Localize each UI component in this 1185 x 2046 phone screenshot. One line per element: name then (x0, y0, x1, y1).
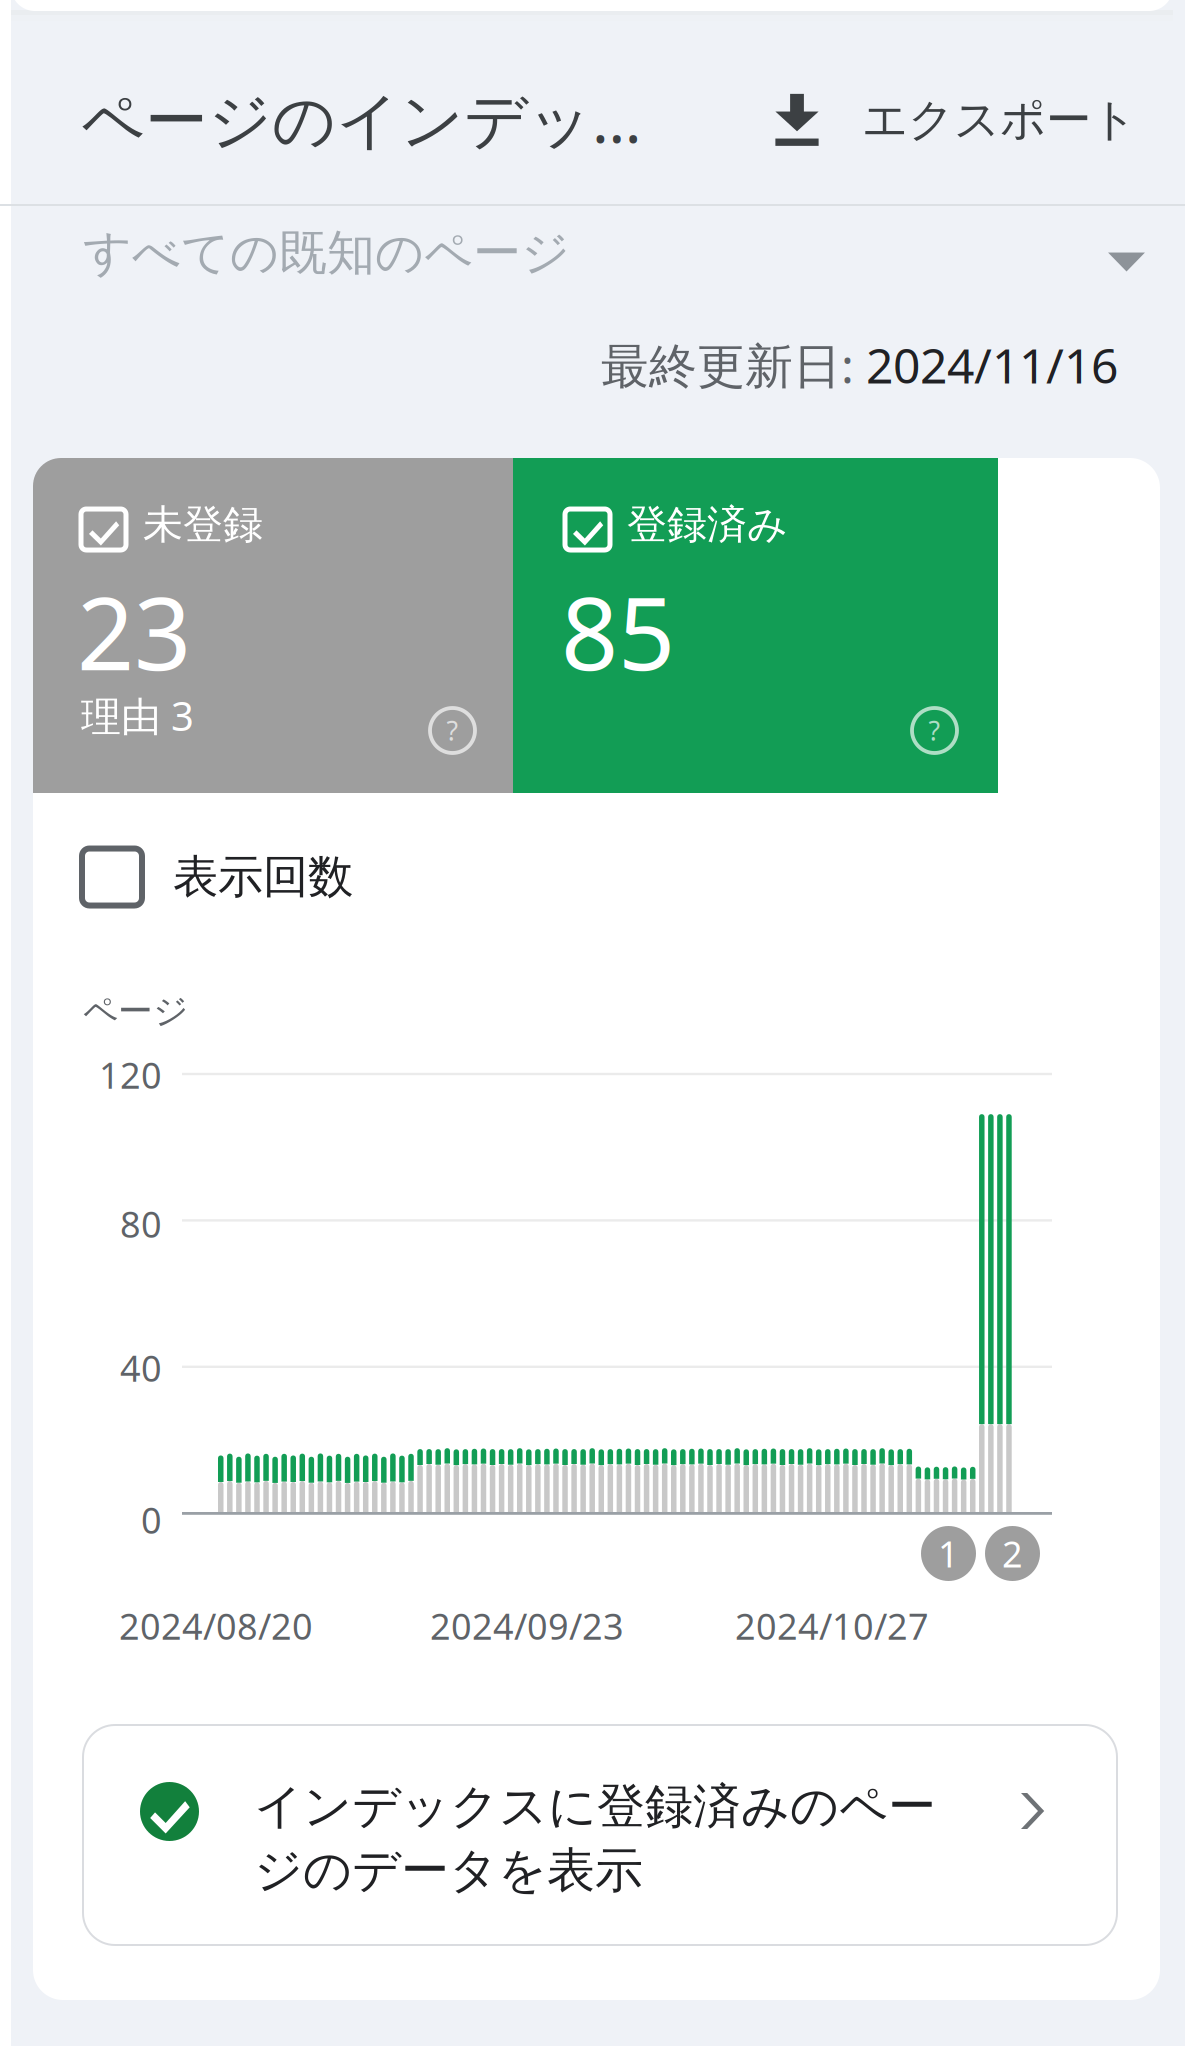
staticText: 80 (120, 1200, 162, 1248)
staticText: 1 (938, 1530, 959, 1577)
staticText: 未登録 (143, 500, 263, 549)
staticText: 2024/09/23 (430, 1602, 624, 1650)
staticText: 最終更新日: (601, 333, 866, 397)
staticText: 0 (141, 1496, 162, 1544)
staticText: 23 (77, 565, 191, 698)
staticText: 2024/08/20 (119, 1602, 313, 1650)
staticText: 2 (1002, 1530, 1023, 1577)
staticText: ? (446, 713, 458, 748)
staticText: エクスポート (862, 92, 1137, 148)
button[interactable]: 登録済み (513, 458, 998, 793)
staticText: ページのインデッ… (81, 77, 642, 160)
staticText: 理由 3 (81, 689, 194, 742)
staticText: 2024/11/16 (866, 333, 1118, 397)
staticText: 85 (561, 565, 675, 698)
staticText: ? (928, 713, 940, 748)
staticText: すべての既知のページ (83, 223, 570, 282)
staticText: 120 (99, 1051, 162, 1099)
staticText: インデックスに登録済みのペー (254, 1777, 936, 1836)
staticText: 40 (120, 1344, 162, 1392)
staticText: ページ (83, 990, 188, 1033)
button[interactable]: エクスポート (774, 70, 1137, 170)
staticText: 2024/10/27 (735, 1602, 929, 1650)
staticText: ジのデータを表示 (254, 1841, 643, 1900)
button[interactable]: インデックスに登録済みのペー (83, 1725, 1117, 1945)
staticText: 表示回数 (173, 849, 353, 905)
staticText: 登録済み (627, 500, 788, 549)
button[interactable]: 表示回数 (33, 802, 1160, 952)
button[interactable]: 未登録 (33, 458, 513, 793)
button[interactable]: すべての既知のページ (0, 197, 1185, 309)
